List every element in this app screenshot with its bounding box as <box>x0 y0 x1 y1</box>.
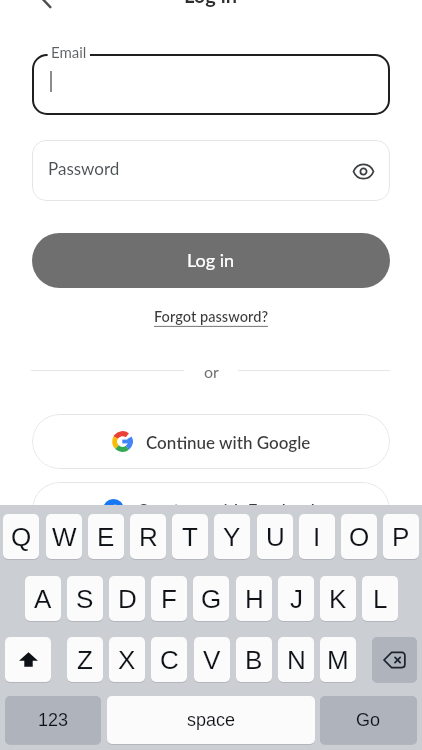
staticText: Password <box>48 158 120 178</box>
staticText: B <box>245 645 263 674</box>
staticText: J <box>290 584 303 613</box>
button[interactable]: Y <box>214 514 250 559</box>
staticText: E <box>97 522 115 551</box>
staticText: M <box>327 645 349 674</box>
button[interactable]: R <box>130 514 166 559</box>
staticText: V <box>203 645 221 674</box>
button[interactable]: T <box>172 514 208 559</box>
staticText: Go <box>356 710 381 730</box>
staticText: D <box>118 584 137 613</box>
staticText: F <box>161 584 177 613</box>
button[interactable]: Forgot password? <box>144 302 279 332</box>
button[interactable]: U <box>257 514 293 559</box>
button[interactable]: B <box>236 637 272 682</box>
button[interactable]: V <box>194 637 230 682</box>
staticText: Z <box>77 645 93 674</box>
button[interactable]: Shift <box>5 637 51 682</box>
button[interactable]: I <box>299 514 335 559</box>
button[interactable]: X <box>109 637 145 682</box>
button[interactable]: C <box>151 637 187 682</box>
button[interactable]: W <box>46 514 82 559</box>
button[interactable]: Q <box>3 514 39 559</box>
button[interactable]: space <box>107 696 315 744</box>
staticText: R <box>139 522 158 551</box>
staticText: W <box>52 522 77 551</box>
button[interactable]: Back <box>24 0 68 20</box>
button[interactable]: E <box>88 514 124 559</box>
button[interactable]: K <box>320 576 356 621</box>
button[interactable]: G <box>193 576 229 621</box>
staticText: L <box>373 584 388 613</box>
staticText: K <box>329 584 347 613</box>
staticText: 123 <box>38 710 69 730</box>
staticText: S <box>76 584 94 613</box>
staticText: Log in <box>184 0 238 7</box>
button[interactable]: F <box>151 576 187 621</box>
button[interactable]: Show password <box>348 156 378 186</box>
staticText: U <box>266 522 285 551</box>
staticText: N <box>287 645 306 674</box>
button[interactable]: S <box>67 576 103 621</box>
button[interactable]: Continue with Facebook <box>32 482 390 537</box>
staticText: C <box>160 645 179 674</box>
staticText: T <box>182 522 198 551</box>
button[interactable]: Z <box>67 637 103 682</box>
button[interactable]: Go <box>320 696 417 744</box>
staticText: Email <box>51 43 87 61</box>
button[interactable]: Continue with Google <box>32 414 390 469</box>
button[interactable]: M <box>320 637 356 682</box>
staticText: Log in <box>187 249 235 271</box>
button[interactable]: H <box>236 576 272 621</box>
staticText: I <box>313 522 321 551</box>
staticText: A <box>34 584 52 613</box>
staticText: G <box>201 584 222 613</box>
button[interactable]: 123 <box>5 696 101 744</box>
staticText: O <box>349 522 370 551</box>
button[interactable]: A <box>25 576 61 621</box>
staticText: or <box>204 362 219 381</box>
staticText: space <box>187 710 236 730</box>
button[interactable]: Password <box>32 140 390 201</box>
button[interactable]: Backspace <box>372 637 417 682</box>
staticText: Y <box>223 522 241 551</box>
button[interactable]: N <box>278 637 314 682</box>
button[interactable]: Log in <box>32 233 390 288</box>
staticText: X <box>118 645 136 674</box>
staticText: P <box>392 522 410 551</box>
staticText: Continue with Facebook <box>137 500 320 520</box>
button[interactable]: P <box>383 514 419 559</box>
staticText: Forgot password? <box>154 308 269 326</box>
staticText: H <box>245 584 264 613</box>
staticText: Q <box>11 522 32 551</box>
button[interactable]: J <box>278 576 314 621</box>
button[interactable]: L <box>362 576 398 621</box>
button[interactable]: D <box>109 576 145 621</box>
staticText: Continue with Google <box>146 432 311 452</box>
button[interactable]: O <box>341 514 377 559</box>
